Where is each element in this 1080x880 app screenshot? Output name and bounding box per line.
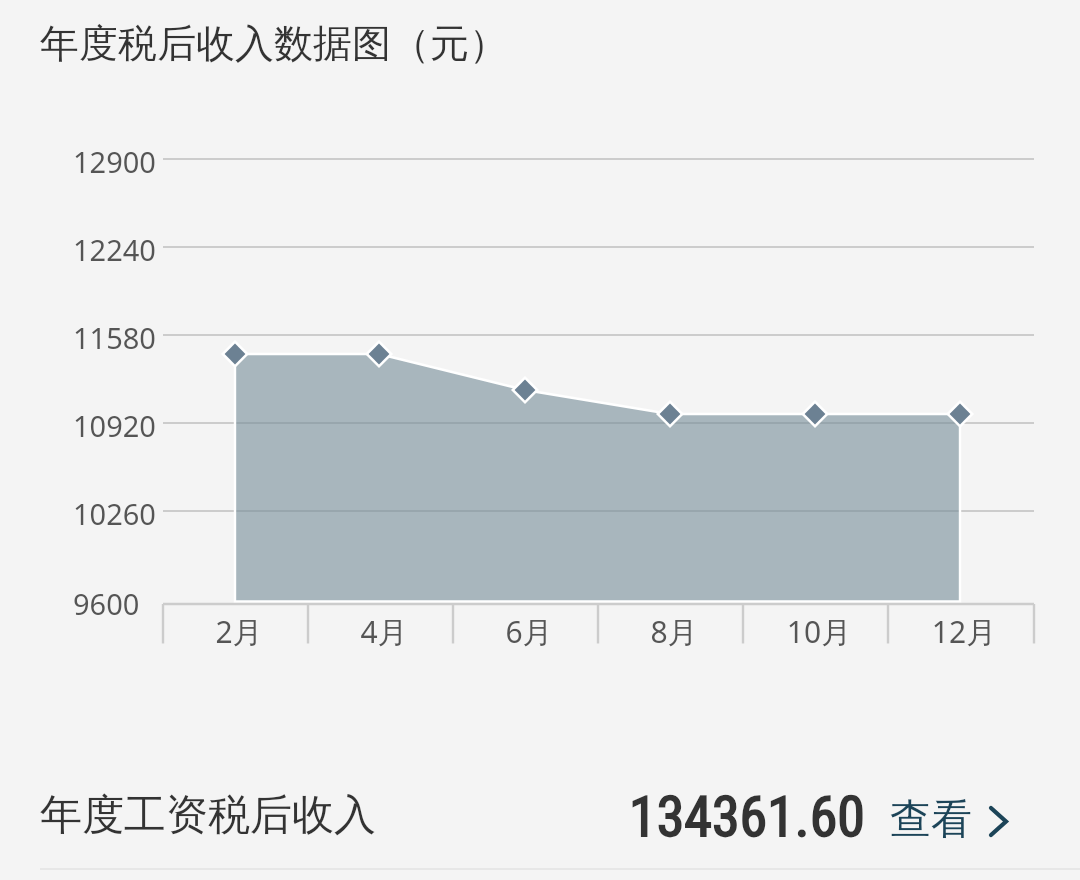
staticText: 8月: [604, 611, 744, 652]
staticText: 10920: [73, 406, 156, 445]
staticText: 10月: [749, 611, 889, 652]
staticText: 年度工资税后收入: [40, 789, 376, 842]
staticText: 12240: [73, 230, 156, 269]
button[interactable]: 年度工资税后收入: [0, 761, 1080, 870]
staticText: 6月: [459, 611, 599, 652]
staticText: 查看: [890, 794, 972, 846]
other: 查看详情: [988, 805, 1009, 838]
staticText: 年度税后收入数据图（元）: [40, 19, 508, 68]
staticText: 10260: [73, 494, 156, 533]
staticText: 12900: [73, 142, 156, 181]
staticText: 9600: [73, 584, 140, 623]
staticText: 4月: [314, 611, 454, 652]
staticText: 11580: [73, 318, 156, 357]
staticText: 134361.60: [629, 784, 865, 850]
staticText: 12月: [894, 611, 1034, 652]
button[interactable]: 查看: [884, 761, 1016, 870]
staticText: 2月: [169, 611, 309, 652]
